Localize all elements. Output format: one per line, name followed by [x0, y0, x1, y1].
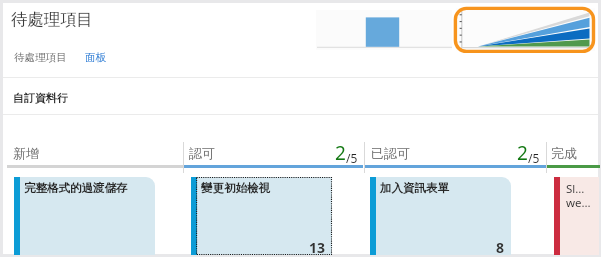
button[interactable]: 完整格式的過渡儲存	[14, 177, 155, 255]
staticText: 新增	[13, 145, 39, 161]
staticText: Sl… we…	[566, 181, 591, 211]
staticText: 認可	[189, 145, 215, 161]
staticText: 待處理項目	[11, 9, 93, 30]
staticText: 已認可	[371, 145, 410, 161]
staticText: 變更初始檢視	[201, 181, 270, 195]
button[interactable]: Sl… we…	[554, 177, 599, 255]
button[interactable]: Bar chart	[316, 12, 455, 53]
staticText: 加入資訊表單	[380, 181, 449, 195]
staticText: /5	[346, 150, 358, 166]
staticText: 自訂資料行	[13, 91, 68, 105]
staticText: 面板	[85, 51, 107, 64]
button[interactable]: 自訂資料行	[13, 91, 68, 105]
button[interactable]: 變更初始檢視	[191, 177, 332, 255]
button[interactable]	[364, 130, 546, 168]
button[interactable]: 加入資訊表單	[370, 177, 511, 255]
button[interactable]: Trend chart	[455, 7, 601, 59]
button[interactable]: 面板	[85, 51, 107, 64]
button[interactable]	[183, 130, 364, 168]
button[interactable]	[3, 130, 183, 168]
button[interactable]: 待處理項目	[14, 51, 67, 64]
staticText: 2	[335, 140, 346, 166]
staticText: 2	[517, 140, 528, 166]
staticText: 待處理項目	[14, 51, 67, 64]
staticText: 13	[309, 238, 326, 257]
staticText: /5	[528, 150, 540, 166]
button[interactable]	[546, 130, 598, 168]
staticText: 完成	[551, 145, 577, 161]
staticText: 完整格式的過渡儲存	[24, 181, 128, 195]
staticText: 8	[496, 238, 505, 257]
